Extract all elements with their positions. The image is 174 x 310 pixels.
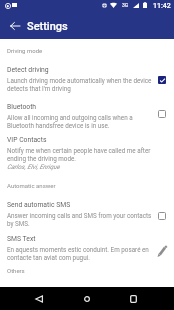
button[interactable]: Bluetooth <box>7 103 37 111</box>
button[interactable]: Home <box>76 287 98 310</box>
staticText: Driving mode <box>7 47 43 54</box>
button[interactable]: En aquests moments estic conduint. Em po… <box>7 246 157 262</box>
staticText: Detect driving <box>7 66 49 74</box>
button[interactable]: Send automatic SMS <box>7 201 71 209</box>
button[interactable]: Launch driving mode automatically when t… <box>7 77 157 93</box>
button[interactable]: Detect driving <box>7 66 49 74</box>
staticText: Carlos, Elvi, Enrique <box>7 163 60 170</box>
button[interactable]: VIP Contacts <box>7 136 47 144</box>
button[interactable]: Toggle setting <box>153 71 171 89</box>
button[interactable]: Edit SMS text <box>152 241 171 260</box>
staticText: 11:42 <box>153 2 171 10</box>
staticText: 3G <box>122 2 129 8</box>
button[interactable]: Notify me when certain people have calle… <box>7 147 157 163</box>
button[interactable]: Others <box>7 267 25 274</box>
staticText: Notify me when certain people have calle… <box>7 147 157 163</box>
staticText: Allow all incoming and outgoing calls wh… <box>7 114 157 130</box>
button[interactable]: Allow all incoming and outgoing calls wh… <box>7 114 157 130</box>
button[interactable]: Answer incoming calls and SMS from your … <box>7 212 157 228</box>
staticText: Settings <box>27 20 68 33</box>
staticText: VIP Contacts <box>7 136 47 144</box>
button[interactable]: Back <box>28 287 50 310</box>
staticText: En aquests moments estic conduint. Em po… <box>7 246 157 262</box>
staticText: Others <box>7 267 25 274</box>
button[interactable]: Navigate up <box>5 13 24 39</box>
button[interactable]: Toggle setting <box>153 105 171 123</box>
staticText: Automatic answer <box>7 182 56 189</box>
button[interactable]: Toggle setting <box>153 207 171 225</box>
staticText: Bluetooth <box>7 103 37 111</box>
staticText: Launch driving mode automatically when t… <box>7 77 157 93</box>
staticText: SMS Text <box>7 235 36 243</box>
staticText: Answer incoming calls and SMS from your … <box>7 212 157 228</box>
button[interactable]: Automatic answer <box>7 182 56 189</box>
button[interactable]: Driving mode <box>7 47 43 54</box>
staticText: Send automatic SMS <box>7 201 71 209</box>
button[interactable]: Recent apps <box>122 287 144 310</box>
button[interactable]: SMS Text <box>7 235 36 243</box>
